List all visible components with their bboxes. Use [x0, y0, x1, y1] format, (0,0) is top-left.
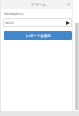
button[interactable]: 測定器 [3, 18, 72, 27]
staticText: Gateway識別名 [4, 12, 24, 16]
other: Open list [66, 21, 70, 25]
staticText: アラーム [31, 2, 47, 7]
button[interactable]: レポートを表示 [4, 31, 72, 40]
staticText: レポートを表示 [26, 34, 51, 38]
staticText: 測定器 [5, 21, 14, 25]
button[interactable]: More options [64, 0, 72, 9]
